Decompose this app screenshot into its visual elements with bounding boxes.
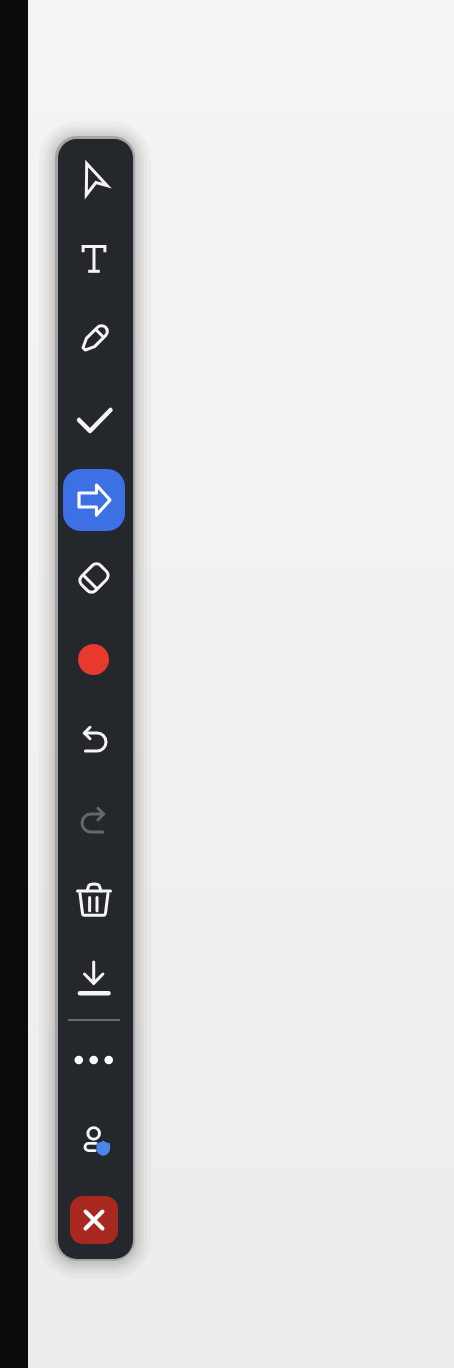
button[interactable] — [72, 317, 116, 361]
button[interactable] — [72, 800, 116, 844]
button[interactable] — [72, 398, 116, 442]
button[interactable] — [72, 160, 116, 204]
button[interactable] — [72, 237, 116, 281]
button[interactable] — [72, 1038, 116, 1082]
button[interactable] — [72, 879, 116, 923]
button[interactable] — [72, 719, 116, 763]
button[interactable] — [70, 1196, 118, 1244]
button[interactable] — [78, 644, 109, 675]
button[interactable] — [63, 469, 125, 531]
button[interactable] — [72, 1122, 116, 1166]
button[interactable] — [72, 556, 116, 600]
button[interactable] — [72, 956, 116, 1000]
